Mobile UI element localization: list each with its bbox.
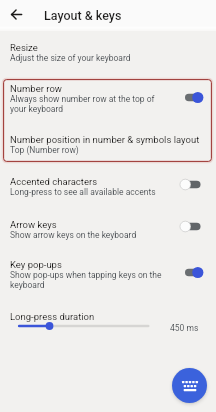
staticText: Show arrow keys on the keyboard [10, 230, 137, 240]
staticText: keyboard [10, 280, 45, 290]
staticText: Number position in number & symbols layo… [10, 134, 210, 145]
button[interactable]: Number position in number & symbols layo… [0, 134, 216, 155]
staticText: Top (Number row) [10, 145, 79, 155]
staticText: Always show number row at the top of [10, 94, 155, 104]
button[interactable]: Open keyboard [172, 368, 207, 403]
button[interactable]: Arrow keys [0, 219, 216, 240]
button[interactable]: Resize [0, 42, 216, 63]
button[interactable]: Toggle Arrow keys [180, 220, 204, 233]
button[interactable]: Accented characters [0, 176, 216, 197]
staticText: Arrow keys [10, 219, 180, 230]
staticText: Key pop-ups [10, 259, 180, 270]
staticText: Layout & keys [44, 8, 122, 23]
staticText: Number row [10, 83, 180, 94]
staticText: Show pop-ups when tapping keys on the [10, 270, 162, 280]
staticText: Adjust the size of your keyboard [10, 53, 131, 63]
button[interactable]: Toggle Accented characters [180, 178, 204, 191]
staticText: Long-press duration [10, 311, 95, 322]
button[interactable]: Toggle Key pop-ups [180, 266, 204, 279]
staticText: Resize [10, 42, 180, 53]
button[interactable]: Toggle Number row [180, 91, 204, 104]
button[interactable]: Back [5, 3, 28, 26]
button[interactable]: Long-press duration [0, 309, 216, 339]
staticText: Accented characters [10, 176, 180, 187]
staticText: Long-press to see all available accents [10, 187, 156, 197]
staticText: 450 ms [170, 323, 199, 333]
button[interactable]: Key pop-ups [0, 259, 216, 290]
button[interactable]: Number row [0, 83, 216, 114]
staticText: your keyboard [10, 104, 64, 114]
